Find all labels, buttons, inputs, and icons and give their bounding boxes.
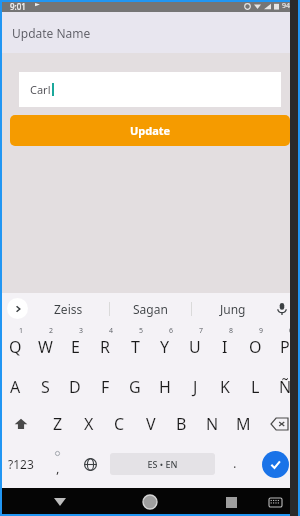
button[interactable]: I [210, 324, 240, 369]
button[interactable]: L [240, 369, 270, 405]
staticText: 0 [289, 326, 294, 336]
button[interactable]: Jung [192, 293, 273, 324]
button[interactable]: S [30, 369, 60, 405]
button[interactable]: D [60, 369, 90, 405]
staticText: 9:01 [10, 1, 26, 12]
staticText: ES • EN [147, 458, 178, 470]
button[interactable]: H [150, 369, 180, 405]
staticText: E [71, 336, 80, 358]
staticText: D [69, 376, 81, 398]
button[interactable]: B [166, 405, 197, 443]
button[interactable]: X [73, 405, 104, 443]
staticText: 6 [169, 326, 174, 336]
staticText: H [159, 376, 171, 398]
staticText: S [41, 376, 50, 398]
staticText: L [251, 376, 260, 398]
button[interactable]: T [120, 324, 150, 369]
button[interactable]: E [60, 324, 90, 369]
staticText: I [222, 336, 228, 358]
button[interactable]: Backspace [259, 405, 300, 443]
staticText: 4 [109, 326, 114, 336]
button[interactable]: J [180, 369, 210, 405]
staticText: ?123 [8, 456, 34, 472]
staticText: R [100, 336, 110, 358]
button[interactable]: M [228, 405, 259, 443]
staticText: Jung [220, 301, 246, 317]
staticText: 5 [139, 326, 144, 336]
staticText: G [129, 376, 141, 398]
button[interactable]: F [90, 369, 120, 405]
staticText: F [101, 376, 110, 398]
button[interactable]: P [270, 324, 300, 369]
button[interactable]: Ñ [270, 369, 300, 405]
button[interactable]: Keyboard [262, 489, 288, 515]
staticText: V [146, 413, 156, 435]
button[interactable]: Zeiss [28, 293, 109, 324]
button[interactable]: Z [42, 405, 73, 443]
button[interactable]: Carl [19, 72, 281, 107]
button[interactable]: Update [10, 115, 290, 146]
staticText: O [249, 336, 262, 358]
button[interactable]: A [0, 369, 30, 405]
staticText: M [236, 413, 251, 435]
staticText: A [10, 376, 21, 398]
button[interactable]: Voice input [273, 300, 291, 318]
button[interactable]: Comma [41, 443, 74, 485]
staticText: Zeiss [54, 301, 83, 317]
staticText: J [193, 376, 198, 398]
staticText: K [220, 376, 230, 398]
button[interactable]: K [210, 369, 240, 405]
staticText: 9 [259, 326, 264, 336]
button[interactable]: G [120, 369, 150, 405]
staticText: T [131, 336, 140, 358]
button[interactable]: O [240, 324, 270, 369]
staticText: Y [160, 336, 170, 358]
staticText: U [189, 336, 201, 358]
staticText: 2 [49, 326, 54, 336]
button[interactable]: ?123 [0, 443, 41, 485]
staticText: Update Name [12, 25, 91, 41]
staticText: 7 [199, 326, 204, 336]
button[interactable]: Y [150, 324, 180, 369]
button[interactable]: Recent apps [216, 488, 246, 516]
staticText: Carl [30, 82, 51, 97]
button[interactable]: V [135, 405, 166, 443]
button[interactable]: Back [45, 488, 75, 516]
staticText: , [56, 459, 60, 477]
staticText: B [176, 413, 187, 435]
staticText: 8 [229, 326, 234, 336]
staticText: Sagan [133, 301, 168, 317]
staticText: 3 [79, 326, 84, 336]
button[interactable]: Shift [0, 405, 42, 443]
button[interactable]: C [104, 405, 135, 443]
button[interactable]: Done [251, 443, 300, 485]
button[interactable]: ES • EN [110, 453, 215, 475]
button[interactable]: Q [0, 324, 30, 369]
staticText: Z [53, 413, 63, 435]
staticText: 94% [282, 1, 296, 11]
button[interactable]: Change language [74, 443, 107, 485]
button[interactable]: Sagan [110, 293, 191, 324]
staticText: W [38, 336, 53, 358]
button[interactable]: N [197, 405, 228, 443]
staticText: Ñ [279, 376, 292, 398]
button[interactable]: U [180, 324, 210, 369]
staticText: X [84, 413, 94, 435]
staticText: 1 [19, 326, 24, 336]
staticText: N [206, 413, 219, 435]
button[interactable]: R [90, 324, 120, 369]
staticText: P [280, 336, 290, 358]
button[interactable]: Period [218, 443, 251, 485]
staticText: Update [130, 123, 171, 138]
button[interactable]: W [30, 324, 60, 369]
staticText: . [233, 454, 237, 472]
staticText: Q [9, 336, 22, 358]
staticText: C [114, 413, 125, 435]
button[interactable]: More suggestions [7, 298, 28, 319]
button[interactable]: Home [135, 488, 165, 516]
